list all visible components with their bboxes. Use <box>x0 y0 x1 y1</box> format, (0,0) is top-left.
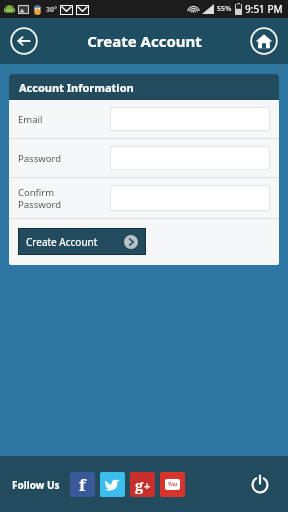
staticText: You <box>168 481 178 488</box>
button[interactable]: Back <box>8 25 40 57</box>
staticText: Confirm Password <box>18 186 110 211</box>
staticText: Follow Us <box>12 478 60 492</box>
staticText: + <box>144 478 151 493</box>
staticText: 55% <box>217 4 232 14</box>
button[interactable]: Home <box>248 25 280 57</box>
button[interactable]: Power / Log out <box>246 470 274 498</box>
button[interactable]: Create Account <box>18 228 146 255</box>
button[interactable] <box>110 146 270 170</box>
button[interactable] <box>110 185 270 211</box>
staticText: Create Account <box>87 31 202 51</box>
button[interactable]: Twitter <box>100 472 125 497</box>
staticText: Create Account <box>26 235 98 249</box>
staticText: g <box>135 475 144 495</box>
staticText: Account Information <box>19 80 134 95</box>
staticText: Email <box>18 113 110 126</box>
staticText: 30° <box>46 5 57 15</box>
button[interactable]: Google Plus <box>130 472 155 497</box>
button[interactable] <box>110 107 270 131</box>
staticText: Password <box>18 152 110 165</box>
button[interactable]: Facebook <box>70 472 95 497</box>
staticText: 9:51 PM <box>245 2 283 16</box>
staticText: f <box>79 474 86 496</box>
button[interactable]: YouTube <box>160 472 185 497</box>
